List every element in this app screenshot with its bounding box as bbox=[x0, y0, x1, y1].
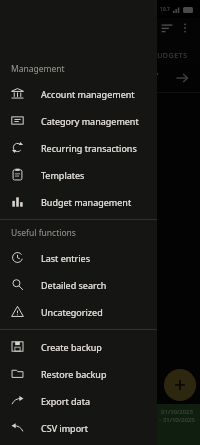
staticText: Templates bbox=[41, 169, 85, 181]
staticText: Uncategorized bbox=[41, 306, 103, 318]
button[interactable]: Restore backup bbox=[0, 360, 157, 387]
button[interactable]: Account management bbox=[0, 80, 157, 107]
staticText: Budget management bbox=[41, 196, 132, 208]
button[interactable]: Next period bbox=[172, 68, 192, 88]
staticText: Recurring transactions bbox=[41, 142, 137, 154]
button[interactable]: CSV import bbox=[0, 414, 157, 441]
staticText: Restore backup bbox=[41, 368, 107, 380]
button[interactable]: Uncategorized bbox=[0, 298, 157, 325]
staticText: 10.7 bbox=[160, 6, 170, 13]
staticText: Useful functions bbox=[11, 227, 76, 239]
button[interactable]: Export data bbox=[0, 387, 157, 414]
button[interactable]: Category management bbox=[0, 107, 157, 134]
staticText: Account management bbox=[41, 88, 135, 100]
button[interactable]: Create backup bbox=[0, 333, 157, 360]
button[interactable]: More options bbox=[177, 20, 193, 36]
button[interactable]: Detailed search bbox=[0, 271, 157, 298]
staticText: Export data bbox=[41, 395, 90, 407]
staticText: 01/10/2025 - 31/10/2025 bbox=[159, 408, 195, 424]
staticText: No transactions in selected date range /… bbox=[10, 103, 190, 127]
staticText: Create backup bbox=[41, 341, 102, 353]
button[interactable]: Sort bbox=[157, 18, 177, 38]
staticText: CSV import bbox=[41, 422, 89, 434]
button[interactable]: Add transaction bbox=[164, 369, 196, 401]
staticText: Detailed search bbox=[41, 279, 107, 291]
staticText: Management bbox=[11, 63, 65, 75]
staticText: Last entries bbox=[41, 252, 90, 264]
button[interactable]: Recurring transactions bbox=[0, 134, 157, 161]
button[interactable]: Filter bbox=[144, 69, 162, 87]
button[interactable]: Last entries bbox=[0, 244, 157, 271]
staticText: Category management bbox=[41, 115, 139, 127]
button[interactable]: Templates bbox=[0, 161, 157, 188]
staticText: BUDGETS bbox=[152, 51, 188, 61]
button[interactable]: Budget management bbox=[0, 188, 157, 215]
